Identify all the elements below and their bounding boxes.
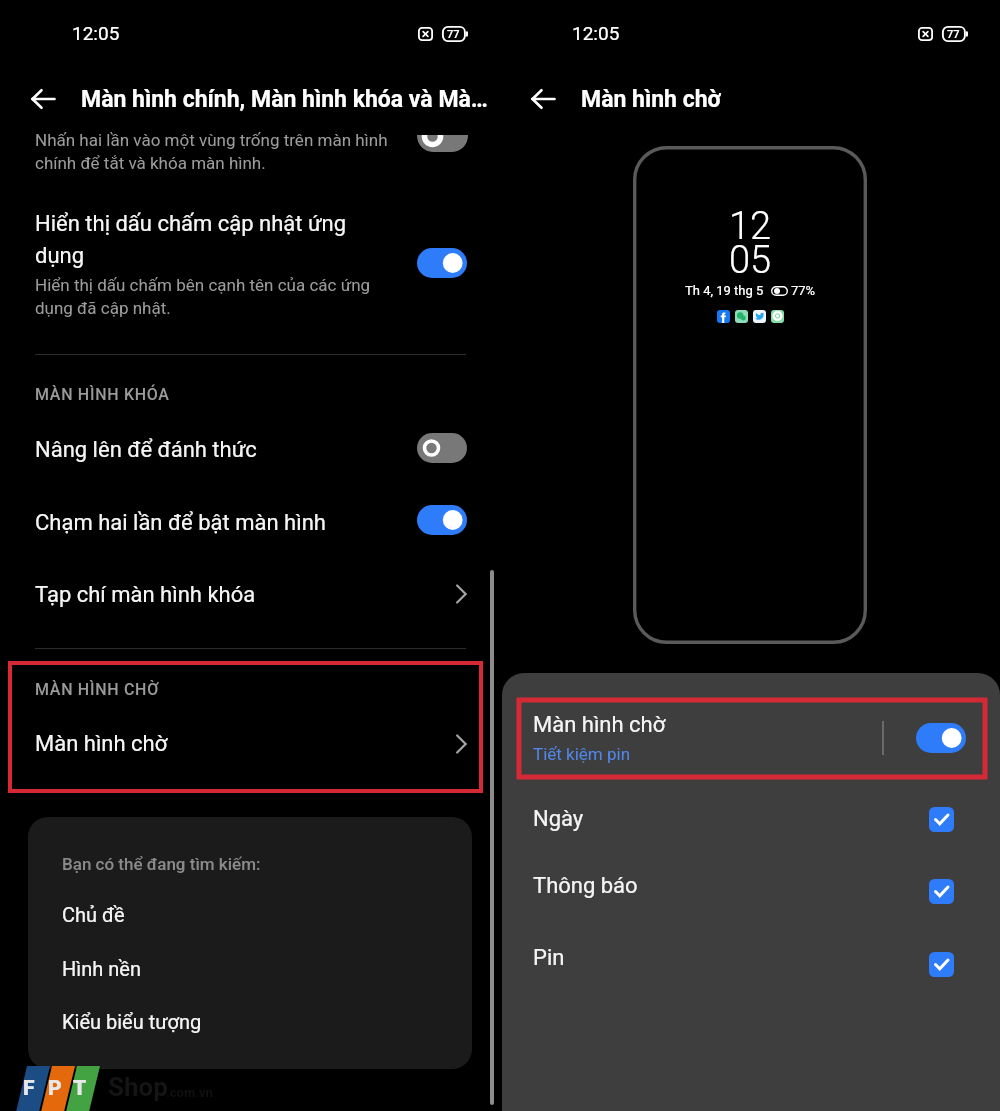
staticText: 12 [729,204,772,249]
button[interactable] [0,560,500,622]
button[interactable]: Chủ đề [62,903,125,926]
staticText: 12:05 [72,22,120,44]
button[interactable]: Checked [929,879,954,904]
staticText: MÀN HÌNH CHỜ [35,680,159,699]
staticText: Nâng lên để đánh thức [35,437,257,463]
staticText: 12:05 [572,22,620,44]
staticText: Màn hình chính, Màn hình khóa và Mà… [81,86,500,113]
button[interactable]: Switch on [417,505,467,535]
button[interactable] [502,691,1000,773]
staticText: chính để tắt và khóa màn hình. [35,153,266,173]
staticText: dụng [35,243,85,269]
staticText: Hiển thị dấu chấm bên cạnh tên của các ứ… [35,275,371,295]
staticText: Tạp chí màn hình khóa [35,582,256,608]
staticText: Hiển thị dấu chấm cập nhật ứng [35,211,347,237]
staticText: Tiết kiệm pin [533,744,631,764]
other: Battery 77 percent [942,26,969,42]
button[interactable] [0,415,500,477]
button[interactable]: Checked [929,952,954,977]
button[interactable]: Switch on [417,248,467,278]
staticText: Chạm hai lần để bật màn hình [35,510,326,536]
staticText: Thông báo [533,873,638,899]
button[interactable]: Kiểu biểu tượng [62,1010,202,1033]
staticText: Ngày [533,806,584,832]
button[interactable] [502,855,1000,925]
button[interactable]: Checked [929,807,954,832]
staticText: MÀN HÌNH KHÓA [35,385,170,404]
button[interactable] [502,927,1000,997]
staticText: Pin [533,945,565,971]
staticText: .com.vn [166,1085,213,1100]
button[interactable]: Back [518,74,570,124]
staticText: Nhấn hai lần vào một vùng trống trên màn… [35,130,388,150]
other: No SIM [418,27,433,41]
staticText: 77 [447,28,460,41]
staticText: Shop [108,1072,168,1102]
button[interactable] [502,783,1000,853]
other: Battery 77 percent [442,26,469,42]
button[interactable]: Back [18,74,70,124]
staticText: F [23,1076,35,1101]
button[interactable] [0,487,500,549]
button[interactable] [0,710,500,772]
button[interactable]: Hình nền [62,957,141,980]
staticText: Màn hình chờ [35,731,168,757]
staticText: Màn hình chờ [533,712,666,738]
other: No SIM [918,27,933,41]
staticText: Th 4, 19 thg 5 [685,283,764,298]
staticText: 77 [947,28,960,41]
staticText: 77% [791,283,816,298]
staticText: 05 [729,238,772,283]
staticText: Màn hình chờ [581,86,721,113]
button[interactable]: Switch off [417,433,467,463]
staticText: P [48,1076,62,1101]
button[interactable]: Switch on [916,723,966,753]
staticText: T [73,1076,87,1101]
staticText: Bạn có thể đang tìm kiếm: [62,854,261,874]
staticText: dụng đã cập nhật. [35,298,171,318]
button[interactable] [0,190,500,320]
